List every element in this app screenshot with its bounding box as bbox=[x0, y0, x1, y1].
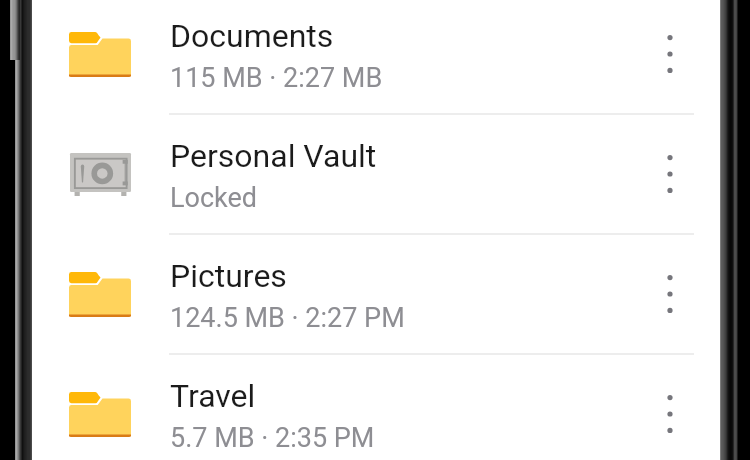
staticText: 124.5 MB · 2:27 PM bbox=[170, 302, 405, 334]
button[interactable]: Personal Vault bbox=[32, 115, 720, 233]
button[interactable]: Pictures bbox=[32, 235, 720, 353]
staticText: Travel bbox=[170, 377, 256, 415]
staticText: Pictures bbox=[170, 257, 287, 295]
staticText: 5.7 MB · 2:35 PM bbox=[170, 422, 375, 454]
button[interactable]: More options bbox=[638, 371, 702, 457]
button[interactable]: More options bbox=[638, 131, 702, 217]
button[interactable]: Travel bbox=[32, 355, 720, 460]
button[interactable]: More options bbox=[638, 251, 702, 337]
staticText: 115 MB · 2:27 MB bbox=[170, 62, 383, 94]
staticText: Documents bbox=[170, 17, 334, 55]
button[interactable]: Documents bbox=[32, 0, 720, 113]
staticText: Locked bbox=[170, 182, 258, 214]
button[interactable]: More options bbox=[638, 11, 702, 97]
staticText: Personal Vault bbox=[170, 137, 377, 175]
